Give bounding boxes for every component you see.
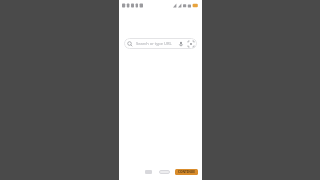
button[interactable]: Item bbox=[145, 170, 152, 174]
button[interactable]: Item bbox=[159, 170, 170, 174]
button[interactable]: Voice search bbox=[177, 40, 184, 47]
staticText: CONTINUE bbox=[178, 170, 195, 174]
button[interactable]: Search bbox=[124, 38, 197, 49]
button[interactable]: CONTINUE bbox=[175, 169, 198, 175]
staticText: Search or type URL bbox=[136, 41, 177, 46]
other: Search bbox=[127, 41, 133, 47]
button[interactable]: Search by image bbox=[187, 40, 194, 47]
